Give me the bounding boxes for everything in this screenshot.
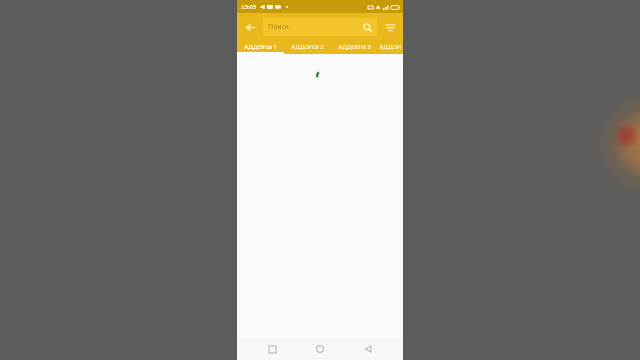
button[interactable]: Search [361, 21, 373, 33]
staticText: АДДОНЫ [378, 43, 403, 51]
button[interactable]: Filter [377, 14, 403, 40]
button[interactable]: Back [355, 338, 381, 360]
staticText: Поиск [268, 22, 289, 32]
staticText: 23:05 [241, 3, 257, 11]
staticText: АДДОНЫ 2 [291, 43, 324, 51]
button[interactable]: Recent apps [259, 338, 285, 360]
staticText: АДДОНЫ 1 [244, 43, 277, 51]
button[interactable]: Back [237, 14, 263, 40]
button[interactable]: АДДОНЫ 1 [237, 40, 284, 54]
button[interactable]: АДДОНЫ 2 [284, 40, 331, 54]
staticText: АДДОНЫ 3 [338, 43, 371, 51]
button[interactable]: АДДОНЫ 3 [331, 40, 378, 54]
button[interactable]: Home [307, 338, 333, 360]
button[interactable]: АДДОНЫ [378, 40, 403, 54]
button[interactable]: Поиск [263, 18, 377, 36]
